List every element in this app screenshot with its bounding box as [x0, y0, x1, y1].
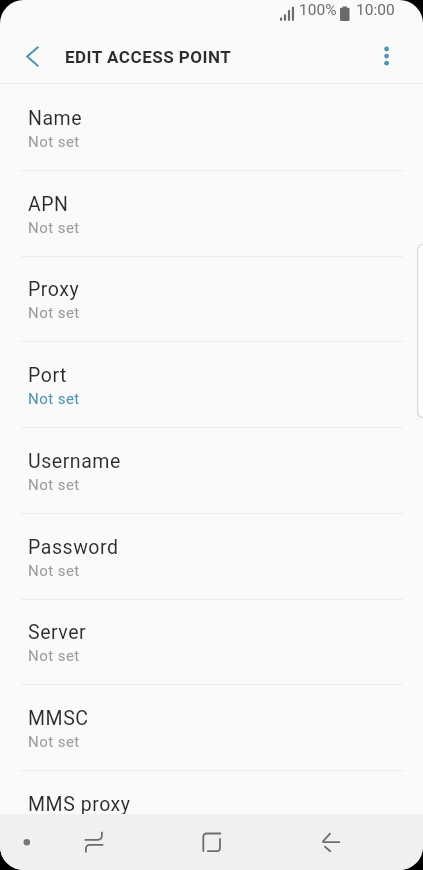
button[interactable]: Navigate up [0, 30, 54, 84]
button[interactable]: Username [0, 428, 423, 514]
staticText: APN [28, 193, 69, 216]
staticText: Not set [28, 133, 80, 151]
staticText: Not set [28, 390, 80, 408]
button[interactable]: Port [0, 342, 423, 428]
staticText: Name [28, 107, 83, 130]
staticText: Port [28, 364, 67, 387]
button[interactable]: Recents [67, 814, 120, 870]
staticText: 100% [299, 1, 337, 19]
button[interactable]: MMS proxy [0, 771, 423, 857]
button[interactable]: More options [371, 30, 423, 84]
button[interactable]: MMSC [0, 685, 423, 771]
staticText: Not set [28, 219, 80, 237]
button[interactable]: Server [0, 599, 423, 685]
staticText: MMSC [28, 707, 89, 730]
staticText: Not set [28, 304, 80, 322]
staticText: Not set [28, 476, 80, 494]
staticText: Not set [28, 733, 80, 751]
staticText: Not set [28, 647, 80, 665]
staticText: Not set [28, 562, 80, 580]
staticText: Server [28, 621, 87, 644]
staticText: MMS proxy [28, 793, 131, 816]
button[interactable]: Home [185, 814, 238, 870]
button[interactable]: Back [305, 814, 358, 870]
staticText: EDIT ACCESS POINT [65, 47, 232, 67]
button[interactable]: Name [0, 85, 423, 171]
staticText: Username [28, 450, 121, 473]
staticText: 10:00 [356, 1, 395, 19]
button[interactable]: Password [0, 514, 423, 600]
staticText: Password [28, 536, 119, 559]
button[interactable]: APN [0, 171, 423, 257]
staticText: Proxy [28, 278, 80, 301]
button[interactable]: Proxy [0, 256, 423, 342]
